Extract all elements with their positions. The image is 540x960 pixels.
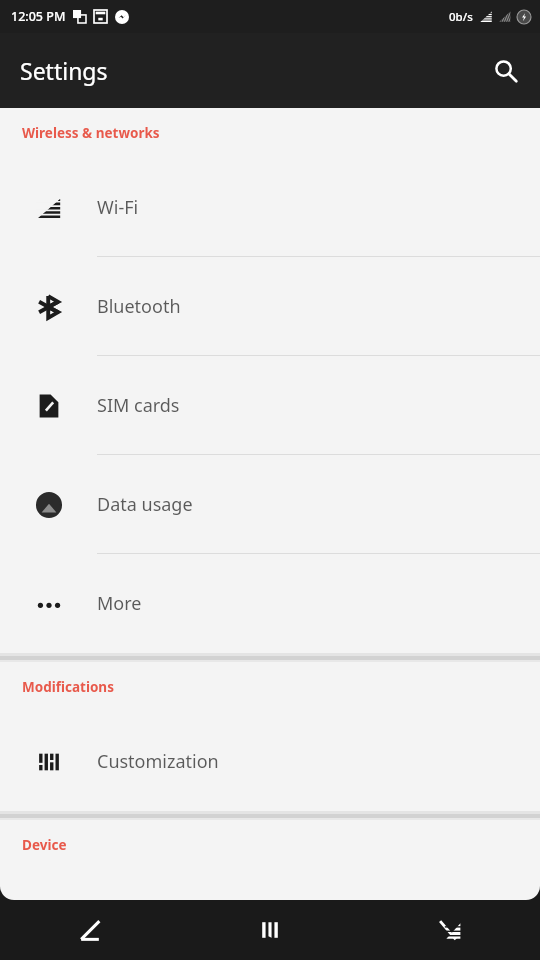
staticText: 0b/s xyxy=(449,9,473,25)
staticText: 12:05 PM xyxy=(11,8,66,25)
button[interactable]: More xyxy=(0,554,540,653)
button[interactable]: SIM cards xyxy=(0,356,540,455)
staticText: Data usage xyxy=(97,492,193,517)
button[interactable]: Data usage xyxy=(0,455,540,554)
staticText: Wi-Fi xyxy=(97,195,139,220)
staticText: Device xyxy=(22,836,67,854)
staticText: Bluetooth xyxy=(97,294,181,319)
button[interactable]: Wi-Fi xyxy=(0,158,540,257)
button[interactable]: Customization xyxy=(0,712,540,811)
staticText: Settings xyxy=(20,55,108,86)
staticText: Wireless & networks xyxy=(22,124,160,142)
button[interactable]: Recents xyxy=(360,900,540,960)
button[interactable]: Bluetooth xyxy=(0,257,540,356)
button[interactable]: Home xyxy=(180,900,360,960)
staticText: Modifications xyxy=(22,678,114,696)
staticText: Customization xyxy=(97,749,219,774)
staticText: SIM cards xyxy=(97,393,180,418)
staticText: More xyxy=(97,591,142,616)
button[interactable]: Search xyxy=(482,47,530,95)
button[interactable]: Back xyxy=(0,900,180,960)
